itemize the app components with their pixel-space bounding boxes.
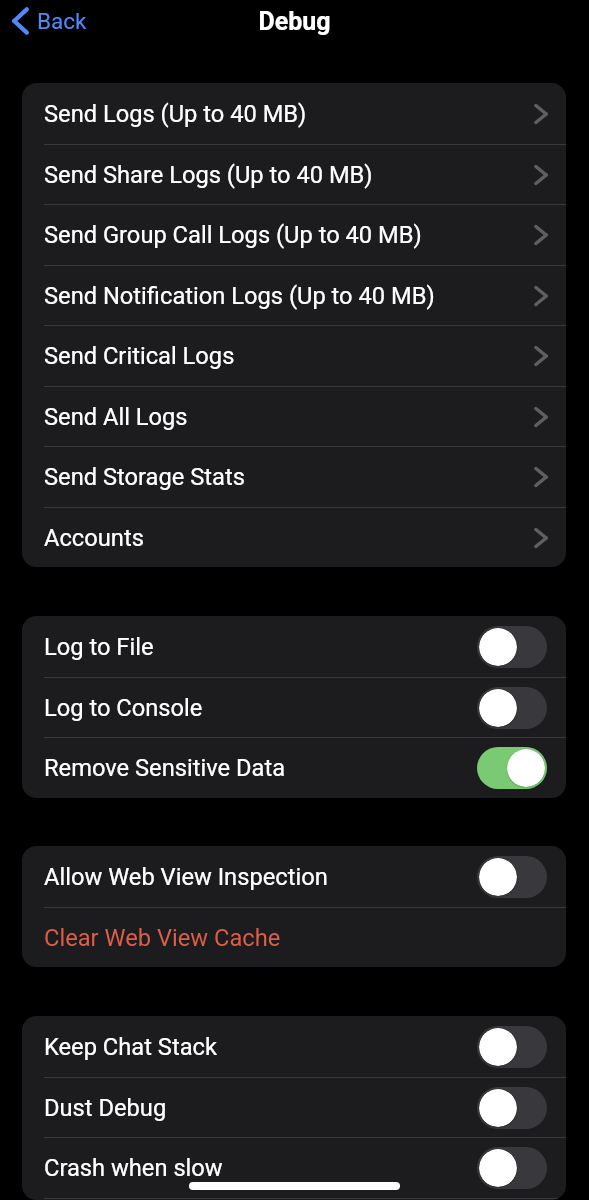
button[interactable]: Send Logs (Up to 40 MB): [22, 83, 566, 144]
button[interactable]: Log to File: [22, 616, 566, 677]
button[interactable]: Keep Chat Stack: [22, 1016, 566, 1077]
staticText: Dust Debug: [44, 1094, 167, 1122]
staticText: Keep Chat Stack: [44, 1033, 217, 1061]
button[interactable]: Remove Sensitive Data: [22, 737, 566, 798]
button[interactable]: Allow Web View Inspection, off: [477, 856, 547, 898]
other: Open: [522, 99, 548, 129]
button[interactable]: Accounts: [22, 507, 566, 567]
button[interactable]: Back: [6, 4, 87, 38]
other: Open: [522, 402, 548, 432]
staticText: Crash when slow: [44, 1154, 223, 1182]
staticText: Debug: [258, 7, 331, 36]
other: Open: [522, 220, 548, 250]
button[interactable]: Verbose Logging: [22, 1198, 566, 1200]
button[interactable]: Send Storage Stats: [22, 446, 566, 507]
staticText: Clear Web View Cache: [44, 924, 281, 952]
button[interactable]: Send All Logs: [22, 386, 566, 447]
staticText: Log to Console: [44, 694, 203, 722]
staticText: Accounts: [44, 524, 144, 552]
button[interactable]: Crash when slow, off: [477, 1147, 547, 1189]
staticText: Send All Logs: [44, 403, 188, 431]
other: Open: [522, 523, 548, 553]
other: Open: [522, 462, 548, 492]
other: Open: [522, 281, 548, 311]
button[interactable]: Crash when slow: [22, 1137, 566, 1198]
other: Open: [522, 341, 548, 371]
staticText: Send Share Logs (Up to 40 MB): [44, 161, 373, 189]
button[interactable]: Send Group Call Logs (Up to 40 MB): [22, 204, 566, 265]
staticText: Allow Web View Inspection: [44, 863, 328, 891]
staticText: Send Critical Logs: [44, 342, 235, 370]
button[interactable]: Send Share Logs (Up to 40 MB): [22, 144, 566, 205]
other: Open: [522, 160, 548, 190]
button[interactable]: Remove Sensitive Data, on: [477, 747, 547, 789]
button[interactable]: Clear Web View Cache: [22, 907, 566, 967]
button[interactable]: Keep Chat Stack, off: [477, 1026, 547, 1068]
button[interactable]: Log to File, off: [477, 626, 547, 668]
button[interactable]: Allow Web View Inspection: [22, 846, 566, 907]
button[interactable]: Log to Console: [22, 677, 566, 738]
button[interactable]: Dust Debug, off: [477, 1087, 547, 1129]
staticText: Remove Sensitive Data: [44, 754, 286, 782]
button[interactable]: Dust Debug: [22, 1077, 566, 1138]
button[interactable]: Send Critical Logs: [22, 325, 566, 386]
staticText: Back: [37, 8, 87, 34]
staticText: Send Group Call Logs (Up to 40 MB): [44, 221, 422, 249]
staticText: Send Notification Logs (Up to 40 MB): [44, 282, 435, 310]
staticText: Send Logs (Up to 40 MB): [44, 100, 307, 128]
button[interactable]: Send Notification Logs (Up to 40 MB): [22, 265, 566, 326]
button[interactable]: Log to Console, off: [477, 687, 547, 729]
staticText: Send Storage Stats: [44, 463, 245, 491]
staticText: Log to File: [44, 633, 154, 661]
